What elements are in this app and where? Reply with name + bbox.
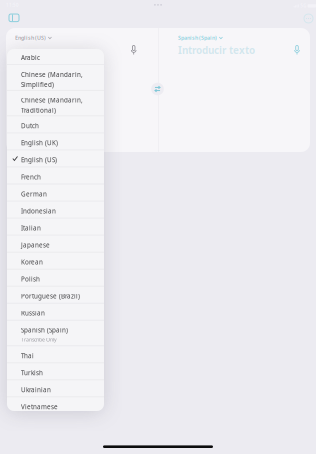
button[interactable]: Indonesian: [7, 201, 104, 218]
button[interactable]: Ukrainian: [7, 380, 104, 397]
staticText: Russian: [21, 309, 45, 317]
button[interactable]: Show sidebar: [6, 11, 22, 25]
button[interactable]: German: [7, 184, 104, 201]
button[interactable]: Dictate Spanish: [292, 43, 302, 57]
button[interactable]: Russian: [7, 303, 104, 320]
staticText: Arabic: [21, 53, 40, 62]
staticText: Italian: [21, 224, 41, 232]
staticText: German: [21, 190, 47, 198]
staticText: Portuguese (Brazil): [21, 292, 80, 300]
staticText: Transcribe Only: [21, 336, 57, 343]
button[interactable]: Polish: [7, 269, 104, 286]
button[interactable]: Chinese (Mandarin,: [7, 90, 104, 116]
button[interactable]: Korean: [7, 252, 104, 269]
staticText: Indonesian: [21, 207, 56, 215]
staticText: Thai: [21, 352, 34, 360]
button[interactable]: Portuguese (Brazil): [7, 286, 104, 303]
staticText: Spanish (Spain): [178, 34, 217, 41]
staticText: Japanese: [21, 241, 50, 249]
button[interactable]: Swap languages: [151, 83, 164, 95]
button[interactable]: Italian: [7, 218, 104, 235]
staticText: Traditional): [21, 106, 56, 115]
staticText: Spanish (Spain): [21, 326, 68, 334]
button[interactable]: English (UK): [7, 133, 104, 150]
button[interactable]: Chinese (Mandarin,: [7, 65, 104, 90]
staticText: English (US): [21, 156, 57, 164]
staticText: Vietnamese: [21, 403, 58, 411]
button[interactable]: More options: [301, 11, 316, 26]
button[interactable]: Dictate English: [128, 43, 139, 57]
button[interactable]: Dutch: [7, 116, 104, 133]
staticText: English (UK): [21, 139, 58, 147]
button[interactable]: Spanish (Spain): [178, 34, 223, 41]
staticText: Chinese (Mandarin,: [21, 96, 83, 104]
staticText: Simplified): [21, 80, 54, 89]
button[interactable]: English (US): [7, 150, 104, 167]
staticText: Dutch: [21, 122, 39, 130]
button[interactable]: Vietnamese: [7, 397, 104, 414]
button[interactable]: Turkish: [7, 363, 104, 380]
button[interactable]: French: [7, 167, 104, 184]
button[interactable]: Spanish (Spain): [7, 320, 104, 346]
button[interactable]: Arabic: [7, 48, 104, 64]
button[interactable]: English (US): [15, 34, 52, 41]
staticText: Introducir texto: [178, 43, 255, 57]
staticText: Polish: [21, 275, 40, 283]
button[interactable]: Thai: [7, 346, 104, 363]
staticText: Turkish: [21, 369, 43, 377]
staticText: French: [21, 173, 41, 181]
staticText: Chinese (Mandarin,: [21, 70, 83, 79]
button[interactable]: Japanese: [7, 235, 104, 252]
staticText: Ukrainian: [21, 386, 51, 394]
staticText: English (US): [15, 34, 46, 41]
staticText: Korean: [21, 258, 43, 266]
